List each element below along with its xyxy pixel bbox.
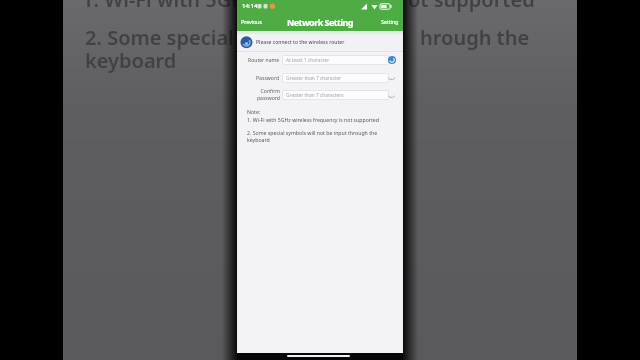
button[interactable] xyxy=(388,56,396,64)
staticText: Network Setting xyxy=(287,16,353,28)
staticText: Setting xyxy=(381,18,399,26)
staticText: Router name xyxy=(248,57,280,64)
staticText: At least 1 character xyxy=(286,57,330,64)
staticText: 2. Some special s xyxy=(85,24,249,51)
button[interactable]: At least 1 character xyxy=(282,55,389,65)
staticText: Password xyxy=(256,75,280,82)
button[interactable]: Setting xyxy=(373,13,399,31)
staticText: keyboard xyxy=(247,136,397,143)
button[interactable]: Please connect to the wireless router xyxy=(237,34,403,51)
button[interactable]: Previous xyxy=(241,13,271,31)
staticText: Note: xyxy=(247,108,397,115)
staticText: Confirm password xyxy=(256,88,280,102)
staticText: Please connect to the wireless router xyxy=(256,39,345,46)
button[interactable] xyxy=(387,94,396,101)
staticText: hrough the xyxy=(420,24,530,51)
staticText: keyboard xyxy=(85,47,177,74)
button[interactable] xyxy=(387,76,396,83)
staticText: ot supported xyxy=(408,0,535,13)
staticText: 14:14 xyxy=(242,2,258,10)
staticText: 2. Some special symbols will not be inpu… xyxy=(247,129,397,136)
button[interactable]: Greater than 7 character xyxy=(282,73,389,83)
staticText: Previous xyxy=(241,18,262,26)
button[interactable]: Greater than 7 characters xyxy=(282,90,389,100)
staticText: 1. Wi-Fi with 5GHz wireless frequency is… xyxy=(247,116,397,123)
staticText: 1. Wi-Fi with 5GH xyxy=(82,0,247,13)
staticText: Greater than 7 character xyxy=(286,75,342,82)
staticText: Greater than 7 characters xyxy=(286,92,344,99)
